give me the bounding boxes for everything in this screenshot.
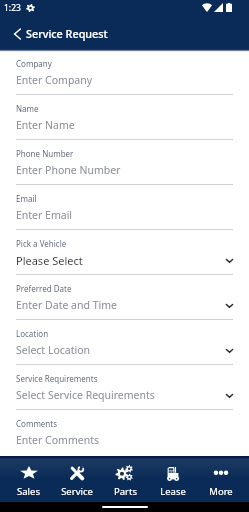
staticText: Sales	[17, 485, 40, 498]
staticText: Email	[16, 193, 37, 204]
staticText: Lease	[160, 485, 186, 498]
button[interactable]: More	[197, 461, 245, 498]
staticText: Enter Phone Number	[16, 163, 121, 177]
button[interactable]: Back	[0, 19, 26, 49]
staticText: Phone Number	[16, 148, 74, 159]
button[interactable]: Parts	[101, 461, 149, 498]
staticText: Parts	[114, 485, 137, 498]
staticText: Enter Date and Time	[16, 298, 117, 312]
staticText: Enter Email	[16, 208, 73, 222]
button[interactable]: Company	[16, 50, 233, 95]
button[interactable]: Name	[16, 95, 233, 140]
staticText: More	[209, 485, 233, 498]
staticText: Pick a Vehicle	[16, 238, 67, 249]
staticText: Service	[61, 485, 93, 498]
button[interactable]: Email	[16, 185, 233, 230]
staticText: Service Requirements	[16, 373, 98, 384]
staticText: Select Service Requirements	[16, 388, 155, 402]
staticText: Name	[16, 103, 39, 114]
other: Open Preferred Date list	[224, 300, 235, 311]
button[interactable]: Location	[16, 320, 233, 365]
button[interactable]: Comments	[16, 410, 233, 455]
button[interactable]: Pick a Vehicle	[16, 230, 233, 275]
button[interactable]: Service Requirements	[16, 365, 233, 410]
other: Open Location list	[224, 345, 235, 356]
staticText: 1:23	[4, 2, 21, 14]
staticText: Enter Name	[16, 118, 75, 132]
staticText: Company	[16, 58, 52, 69]
button[interactable]: Lease	[149, 461, 197, 498]
other: Open Pick a Vehicle list	[224, 255, 235, 266]
button[interactable]: Sales	[4, 461, 53, 498]
staticText: Please Select	[16, 253, 83, 268]
button[interactable]: Phone Number	[16, 140, 233, 185]
staticText: Select Location	[16, 343, 91, 357]
staticText: Enter Comments	[16, 433, 99, 447]
staticText: Location	[16, 328, 49, 339]
button[interactable]: Preferred Date	[16, 275, 233, 320]
staticText: Service Request	[26, 26, 108, 41]
staticText: Enter Company	[16, 73, 93, 87]
other: Open Service Requirements list	[224, 390, 235, 401]
staticText: Preferred Date	[16, 283, 72, 294]
button[interactable]: Service	[53, 461, 101, 498]
staticText: Comments	[16, 418, 58, 429]
